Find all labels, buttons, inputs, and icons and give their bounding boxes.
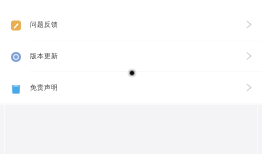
- button[interactable]: 问题反馈: [0, 9, 262, 40]
- staticText: 免责声明: [30, 83, 58, 92]
- staticText: 问题反馈: [30, 20, 58, 29]
- button[interactable]: 免责声明: [0, 72, 262, 103]
- staticText: 版本更新: [30, 52, 58, 60]
- button[interactable]: 版本更新: [0, 40, 262, 71]
